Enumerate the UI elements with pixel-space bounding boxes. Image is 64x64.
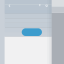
button[interactable]: Share [37, 3, 43, 9]
button[interactable]: Back [6, 3, 13, 9]
button[interactable]: Start the route [22, 28, 42, 36]
button[interactable]: Save [44, 3, 50, 9]
